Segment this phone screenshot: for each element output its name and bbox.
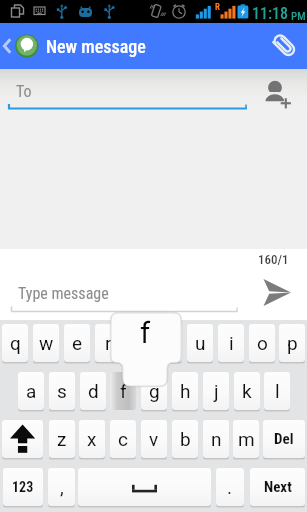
staticText: Type message	[18, 284, 109, 303]
staticText: i	[229, 332, 234, 354]
staticText: R	[215, 2, 220, 13]
button[interactable]: .	[216, 468, 244, 506]
staticText: o	[257, 332, 268, 354]
staticText: h	[180, 380, 191, 402]
button[interactable]: w	[33, 324, 59, 362]
button[interactable]: Next	[250, 468, 305, 506]
button[interactable]: l	[264, 372, 290, 410]
staticText: Del	[274, 430, 294, 448]
staticText: b	[180, 428, 191, 450]
button[interactable]: Navigate up	[0, 23, 40, 69]
staticText: .	[227, 476, 233, 498]
staticText: l	[275, 380, 280, 402]
staticText: v	[149, 428, 159, 450]
button[interactable]: u	[187, 324, 213, 362]
staticText: k	[242, 380, 252, 402]
button[interactable]: f	[110, 372, 136, 410]
staticText: 11:18	[252, 4, 289, 23]
button[interactable]: o	[249, 324, 275, 362]
button[interactable]: a	[18, 372, 44, 410]
button[interactable]: Space	[78, 468, 211, 506]
staticText: f	[120, 380, 127, 402]
staticText: 123	[12, 479, 34, 495]
button[interactable]: x	[79, 420, 105, 458]
button[interactable]: e	[64, 324, 90, 362]
staticText: x	[87, 428, 97, 450]
staticText: ,	[60, 476, 64, 498]
button[interactable]: Numbers	[3, 468, 43, 506]
button[interactable]: p	[279, 324, 305, 362]
button[interactable]: r	[95, 324, 121, 362]
button[interactable]: t	[126, 324, 152, 362]
staticText: r	[105, 332, 112, 354]
button[interactable]: z	[49, 420, 75, 458]
button[interactable]: h	[172, 372, 198, 410]
button[interactable]: q	[2, 324, 28, 362]
staticText: PM	[291, 10, 306, 23]
button[interactable]: v	[141, 420, 167, 458]
button[interactable]: Delete	[263, 420, 305, 458]
staticText: u	[195, 332, 206, 354]
staticText: n	[211, 428, 222, 450]
staticText: e	[72, 332, 83, 354]
staticText: z	[57, 428, 67, 450]
staticText: m	[238, 428, 255, 450]
staticText: f	[140, 316, 151, 350]
button[interactable]: m	[233, 420, 259, 458]
staticText: New message	[46, 36, 146, 57]
staticText: j	[214, 380, 219, 402]
button[interactable]: d	[80, 372, 106, 410]
button[interactable]: ,	[48, 468, 75, 506]
button[interactable]: n	[203, 420, 229, 458]
button[interactable]: k	[234, 372, 260, 410]
button[interactable]: b	[172, 420, 198, 458]
staticText: Next	[264, 478, 292, 496]
staticText: c	[118, 428, 128, 450]
staticText: q	[10, 332, 21, 354]
staticText: 160/1	[258, 252, 289, 267]
button[interactable]: g	[141, 372, 167, 410]
staticText: To	[16, 82, 32, 101]
button[interactable]: i	[218, 324, 244, 362]
button[interactable]: j	[203, 372, 229, 410]
staticText: d	[88, 380, 99, 402]
button[interactable]: Attach	[263, 23, 307, 69]
button[interactable]: Shift	[2, 420, 43, 458]
button[interactable]: Send	[259, 249, 307, 320]
button[interactable]: Add recipient	[258, 69, 303, 115]
staticText: a	[26, 380, 37, 402]
button[interactable]: c	[110, 420, 136, 458]
button[interactable]: y	[156, 324, 182, 362]
button[interactable]: s	[49, 372, 75, 410]
staticText: s	[57, 380, 67, 402]
staticText: p	[287, 332, 298, 354]
staticText: g	[149, 380, 160, 402]
staticText: w	[39, 332, 54, 354]
